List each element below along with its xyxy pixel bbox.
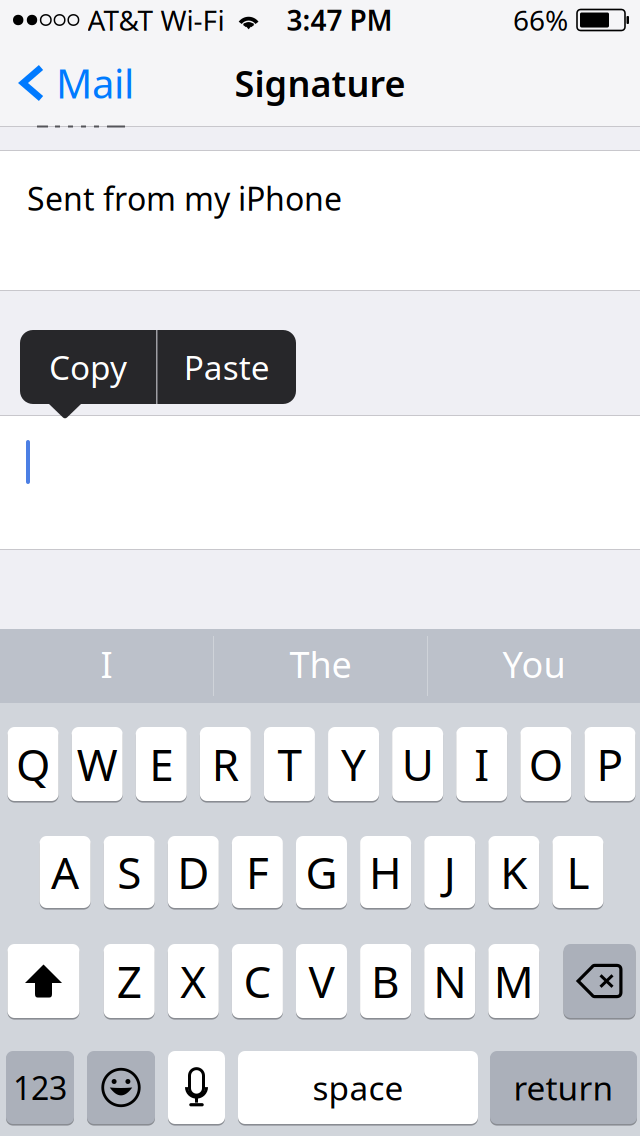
button[interactable]: C bbox=[232, 944, 283, 1018]
button[interactable]: Y bbox=[328, 727, 379, 801]
button[interactable]: I bbox=[456, 727, 507, 801]
staticText: F bbox=[246, 843, 269, 901]
staticText: R bbox=[212, 735, 239, 793]
staticText: Sent from my iPhone bbox=[27, 177, 342, 219]
staticText: U bbox=[402, 735, 434, 793]
staticText: Signature bbox=[234, 59, 405, 107]
staticText: Mail bbox=[56, 56, 134, 109]
button[interactable]: Delete bbox=[563, 944, 635, 1018]
button[interactable]: U bbox=[392, 727, 443, 801]
button[interactable]: The bbox=[214, 629, 427, 703]
staticText: N bbox=[433, 952, 466, 1010]
staticText: B bbox=[371, 952, 400, 1010]
button[interactable]: Paste bbox=[157, 330, 296, 404]
button[interactable]: 123 bbox=[6, 1051, 74, 1124]
staticText: L bbox=[566, 843, 589, 901]
button[interactable]: D bbox=[168, 836, 219, 908]
staticText: Y bbox=[341, 735, 366, 793]
staticText: C bbox=[243, 952, 271, 1010]
staticText: I bbox=[474, 735, 489, 793]
staticText: space bbox=[312, 1065, 403, 1110]
button[interactable]: W bbox=[72, 727, 123, 801]
staticText: W bbox=[77, 735, 118, 793]
button[interactable]: G bbox=[296, 836, 347, 908]
staticText: V bbox=[308, 952, 334, 1010]
button[interactable]: You bbox=[428, 629, 640, 703]
staticText: E bbox=[149, 735, 173, 793]
staticText: return bbox=[513, 1065, 613, 1110]
staticText: X bbox=[180, 952, 206, 1010]
staticText: G bbox=[305, 843, 337, 901]
staticText: O bbox=[529, 735, 563, 793]
button[interactable]: Q bbox=[8, 727, 59, 801]
button[interactable]: O bbox=[520, 727, 571, 801]
button[interactable]: J bbox=[424, 836, 475, 908]
button[interactable]: M bbox=[488, 944, 539, 1018]
staticText: AT&T Wi-Fi bbox=[88, 1, 225, 39]
staticText: T bbox=[277, 735, 301, 793]
staticText: The bbox=[289, 640, 351, 688]
button[interactable]: Z bbox=[104, 944, 155, 1018]
staticText: D bbox=[177, 843, 209, 901]
staticText: 66% bbox=[513, 1, 568, 39]
staticText: Copy bbox=[49, 345, 127, 389]
staticText: A bbox=[51, 843, 79, 901]
button[interactable]: B bbox=[360, 944, 411, 1018]
button[interactable]: N bbox=[424, 944, 475, 1018]
staticText: I bbox=[100, 640, 112, 688]
button[interactable]: S bbox=[104, 836, 155, 908]
button[interactable]: L bbox=[552, 836, 603, 908]
button[interactable]: Mail bbox=[0, 50, 134, 115]
button[interactable]: F bbox=[232, 836, 283, 908]
button[interactable]: Dictation bbox=[168, 1051, 225, 1124]
button[interactable]: P bbox=[584, 727, 635, 801]
staticText: 123 bbox=[13, 1066, 67, 1109]
staticText: J bbox=[444, 843, 456, 901]
button[interactable]: R bbox=[200, 727, 251, 801]
button[interactable]: V bbox=[296, 944, 347, 1018]
button[interactable]: T bbox=[264, 727, 315, 801]
staticText: H bbox=[369, 843, 402, 901]
button[interactable]: H bbox=[360, 836, 411, 908]
staticText: P bbox=[596, 735, 623, 793]
button[interactable]: space bbox=[238, 1051, 478, 1124]
button[interactable]: Emoji bbox=[87, 1051, 155, 1124]
button[interactable]: X bbox=[168, 944, 219, 1018]
button[interactable]: Shift bbox=[7, 944, 79, 1018]
staticText: Z bbox=[117, 952, 142, 1010]
staticText: 3:47 PM bbox=[287, 1, 393, 39]
staticText: K bbox=[500, 843, 527, 901]
staticText: S bbox=[117, 843, 141, 901]
button[interactable]: return bbox=[490, 1051, 637, 1124]
staticText: Paste bbox=[184, 345, 270, 389]
button[interactable]: E bbox=[136, 727, 187, 801]
staticText: You bbox=[502, 640, 565, 688]
staticText: M bbox=[494, 952, 534, 1010]
button[interactable]: K bbox=[488, 836, 539, 908]
button[interactable]: A bbox=[40, 836, 91, 908]
button[interactable]: Copy bbox=[20, 330, 156, 404]
button[interactable]: I bbox=[0, 629, 213, 703]
staticText: Q bbox=[16, 735, 50, 793]
